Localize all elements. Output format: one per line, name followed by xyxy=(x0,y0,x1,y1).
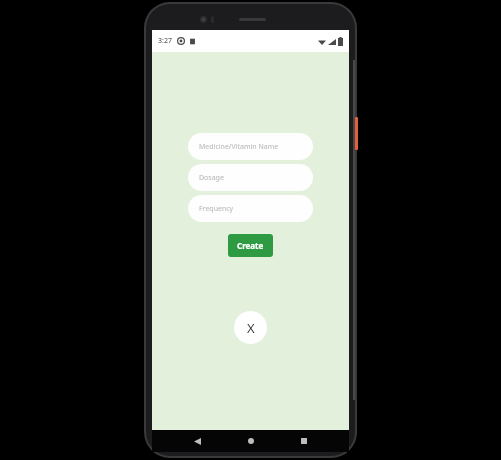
staticText: X xyxy=(247,319,255,337)
button[interactable]: Recent apps xyxy=(294,431,314,451)
staticText: Create xyxy=(237,240,264,251)
button[interactable]: Dosage xyxy=(188,164,313,191)
staticText: Dosage xyxy=(199,173,224,183)
button[interactable]: Frequency xyxy=(188,195,313,222)
staticText: 3:27 xyxy=(158,36,172,46)
staticText: Frequency xyxy=(199,204,234,214)
button[interactable]: Create xyxy=(228,234,273,257)
button[interactable]: Home xyxy=(241,431,261,451)
button[interactable]: Medicine/Vitamin Name xyxy=(188,133,313,160)
staticText: Medicine/Vitamin Name xyxy=(199,142,279,152)
button[interactable]: Close xyxy=(234,311,267,344)
button[interactable]: Back xyxy=(187,431,207,451)
